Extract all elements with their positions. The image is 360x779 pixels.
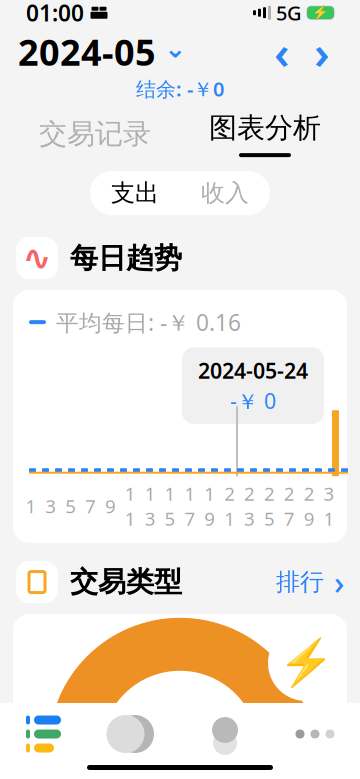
- staticText: 27: [284, 481, 295, 531]
- button[interactable]: 图表: [90, 714, 180, 754]
- staticText: ⚡: [312, 5, 329, 20]
- button[interactable]: 快速记账: [268, 625, 344, 701]
- button[interactable]: 2024-05: [18, 28, 186, 76]
- staticText: 19: [204, 481, 215, 531]
- staticText: 每日趋势: [70, 241, 182, 275]
- staticText: 21: [224, 481, 235, 531]
- staticText: ›: [314, 22, 330, 82]
- button[interactable]: 资产: [180, 714, 270, 754]
- staticText: 9: [105, 494, 116, 518]
- button[interactable]: 排行: [276, 561, 344, 603]
- staticText: 29: [304, 481, 315, 531]
- staticText: 31: [324, 481, 335, 531]
- staticText: 13: [145, 481, 156, 531]
- staticText: 记账: [151, 731, 209, 767]
- staticText: 23: [244, 481, 255, 531]
- staticText: 结余: -￥0: [136, 75, 224, 102]
- staticText: 2024-05: [18, 28, 156, 76]
- staticText: 图表分析: [209, 111, 321, 145]
- staticText: 5G: [276, 0, 302, 26]
- staticText: ⚡: [278, 637, 334, 689]
- staticText: 平均每日: -￥ 0.16: [56, 307, 241, 337]
- button[interactable]: 明细: [0, 717, 90, 751]
- staticText: ‹: [274, 22, 290, 82]
- button[interactable]: 图表分析: [180, 111, 350, 157]
- staticText: 收入: [201, 178, 249, 208]
- staticText: 2024-05-24: [198, 356, 308, 384]
- staticText: ⌄: [164, 33, 186, 63]
- staticText: 11: [125, 481, 136, 531]
- staticText: -￥ 0: [230, 386, 276, 415]
- staticText: 1: [25, 494, 36, 518]
- button[interactable]: 收入: [180, 171, 270, 215]
- staticText: 交易类型: [70, 565, 182, 599]
- staticText: 15: [165, 481, 176, 531]
- staticText: 5: [65, 494, 76, 518]
- staticText: 17: [184, 481, 195, 531]
- staticText: 7: [85, 494, 96, 518]
- staticText: 25: [264, 481, 275, 531]
- button[interactable]: 上个月: [262, 32, 302, 72]
- staticText: 3: [45, 494, 56, 518]
- button[interactable]: 交易记录: [10, 117, 180, 151]
- staticText: 01:00: [26, 0, 84, 28]
- staticText: 支出: [111, 178, 159, 208]
- staticText: ∿: [22, 238, 51, 278]
- button[interactable]: 支出: [90, 171, 180, 215]
- button[interactable]: 更多: [270, 714, 360, 754]
- staticText: 排行: [276, 567, 324, 597]
- staticText: ›: [334, 561, 344, 603]
- button[interactable]: 下个月: [302, 32, 342, 72]
- staticText: 交易记录: [39, 117, 151, 151]
